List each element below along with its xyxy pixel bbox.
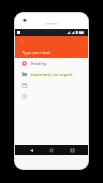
button[interactable]: Reading [15,58,88,69]
button[interactable]: Type your task [15,47,88,58]
button[interactable] [15,91,88,102]
button[interactable]: Important, not urgent [15,69,88,80]
button[interactable]: Recent apps [68,146,77,155]
staticText: Important, not urgent [31,72,73,77]
staticText: Type your task [22,50,51,56]
staticText: Reading [31,61,47,66]
button[interactable]: Back [27,146,36,155]
button[interactable]: Add task [17,37,26,46]
button[interactable] [15,80,88,91]
button[interactable]: Home [47,146,56,155]
button[interactable]: More options [77,37,86,46]
